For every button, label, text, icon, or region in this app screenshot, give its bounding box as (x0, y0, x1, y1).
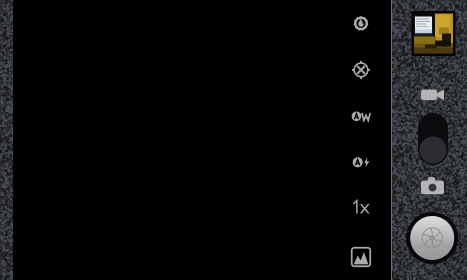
button[interactable]: Auto flash (340, 141, 382, 183)
button[interactable]: Zoom 1x (340, 186, 382, 228)
button[interactable]: Auto white balance (340, 95, 382, 137)
button[interactable]: Camera or video mode (418, 113, 448, 165)
button[interactable]: Shutter (406, 212, 458, 264)
button[interactable]: Last photo (411, 11, 455, 56)
button[interactable]: Night mode (340, 2, 382, 44)
button[interactable]: Photo library (340, 236, 382, 278)
button[interactable]: Focus (340, 49, 382, 91)
